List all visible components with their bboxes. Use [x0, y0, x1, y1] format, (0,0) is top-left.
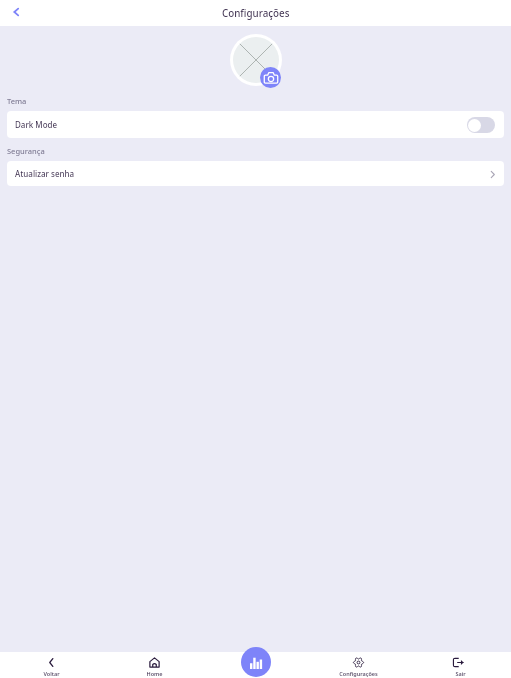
- button[interactable]: Voltar: [6, 4, 25, 23]
- staticText: Home: [146, 670, 163, 677]
- staticText: Configurações: [339, 670, 378, 677]
- button[interactable]: Home: [103, 652, 205, 678]
- button[interactable]: Estatísticas: [241, 647, 271, 677]
- staticText: Segurança: [7, 146, 45, 156]
- staticText: Dark Mode: [15, 119, 58, 130]
- button[interactable]: Configurações: [307, 652, 409, 678]
- button[interactable]: Atualizar senha: [7, 161, 504, 186]
- button[interactable]: Voltar: [0, 652, 103, 678]
- staticText: Configurações: [222, 7, 290, 20]
- button[interactable]: Alterar foto: [260, 67, 281, 88]
- button[interactable]: Dark Mode: [7, 111, 504, 138]
- staticText: Tema: [7, 96, 27, 106]
- button[interactable]: Sair: [409, 652, 511, 678]
- staticText: Voltar: [43, 670, 60, 677]
- staticText: Atualizar senha: [15, 168, 75, 179]
- button[interactable]: Dark Mode: [467, 117, 495, 133]
- staticText: Sair: [455, 670, 466, 677]
